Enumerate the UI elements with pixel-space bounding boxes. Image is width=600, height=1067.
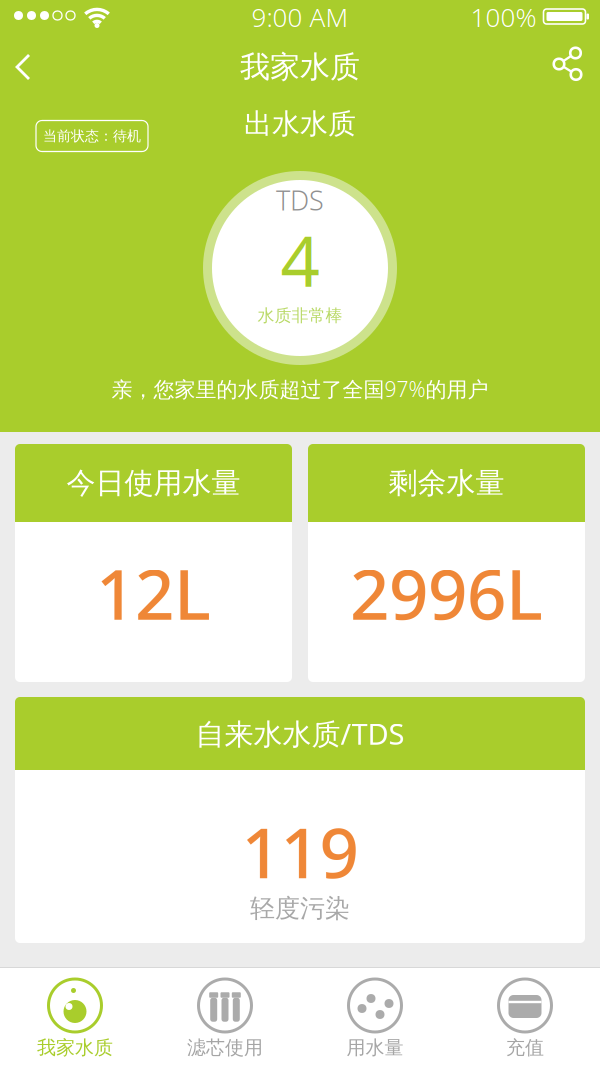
staticText: 用水量 [346, 1036, 403, 1059]
staticText: 当前状态：待机 [43, 127, 141, 145]
staticText: 轻度污染 [250, 893, 350, 924]
staticText: 我家水质 [240, 49, 360, 85]
staticText: 119 [241, 806, 358, 897]
staticText: 4 [280, 214, 319, 306]
staticText: TDS [276, 182, 324, 218]
staticText: 自来水水质/TDS [195, 714, 404, 753]
staticText: 100% [470, 0, 536, 34]
staticText: 今日使用水量 [66, 465, 240, 501]
staticText: 9:00 AM [251, 0, 348, 34]
staticText: 充值 [506, 1036, 544, 1059]
button[interactable]: Share [550, 45, 584, 83]
button[interactable]: 用水量 [300, 968, 450, 1067]
staticText: 剩余水量 [388, 465, 504, 501]
button[interactable]: 我家水质 [0, 968, 150, 1067]
staticText: 出水水质 [244, 107, 356, 141]
button[interactable]: 滤芯使用 [150, 968, 300, 1067]
staticText: 滤芯使用 [187, 1036, 263, 1059]
staticText: 水质非常棒 [257, 305, 342, 326]
staticText: 2996L [350, 547, 543, 639]
staticText: 12L [96, 547, 211, 639]
button[interactable]: 充值 [450, 968, 600, 1067]
button[interactable]: Back [10, 50, 40, 86]
staticText: 我家水质 [37, 1036, 113, 1059]
staticText: 亲，您家里的水质超过了全国97%的用户 [111, 375, 488, 403]
